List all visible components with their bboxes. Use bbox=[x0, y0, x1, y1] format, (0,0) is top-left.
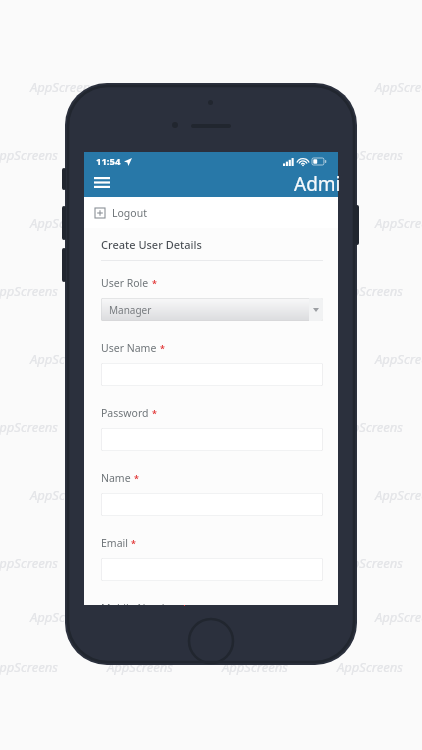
staticText: Password bbox=[101, 406, 149, 420]
staticText: Name bbox=[101, 471, 131, 485]
staticText: Logout bbox=[112, 206, 147, 220]
staticText: * bbox=[160, 342, 165, 354]
staticText: AppScreens bbox=[222, 554, 288, 572]
button[interactable]: Manager bbox=[101, 298, 323, 321]
staticText: AppScreens bbox=[145, 486, 211, 504]
staticText: AppScreens bbox=[337, 146, 403, 164]
staticText: * bbox=[131, 537, 136, 549]
staticText: AppScreens bbox=[337, 554, 403, 572]
staticText: AppScreens bbox=[30, 214, 96, 232]
staticText: AppScreens bbox=[375, 214, 422, 232]
staticText: AppScreens bbox=[222, 146, 288, 164]
staticText: AppScreens bbox=[107, 146, 173, 164]
button[interactable] bbox=[101, 493, 323, 516]
button[interactable] bbox=[101, 558, 323, 581]
staticText: AppScreens bbox=[107, 554, 173, 572]
staticText: AppScreens bbox=[107, 658, 173, 676]
staticText: AppScreens bbox=[30, 350, 96, 368]
staticText: AppScreens bbox=[145, 214, 211, 232]
staticText: AppScreens bbox=[375, 78, 422, 96]
staticText: AppScreens bbox=[0, 554, 58, 572]
staticText: Admi bbox=[294, 171, 341, 197]
staticText: AppScreens bbox=[375, 608, 422, 626]
button[interactable] bbox=[101, 428, 323, 451]
staticText: AppScreens bbox=[375, 350, 422, 368]
staticText: AppScreens bbox=[30, 608, 96, 626]
staticText: * bbox=[152, 277, 157, 289]
staticText: User Name bbox=[101, 341, 157, 355]
staticText: Create User Details bbox=[101, 237, 202, 252]
staticText: AppScreens bbox=[222, 658, 288, 676]
staticText: AppScreens bbox=[30, 486, 96, 504]
staticText: AppScreens bbox=[337, 658, 403, 676]
staticText: * bbox=[134, 472, 139, 484]
staticText: AppScreens bbox=[337, 418, 403, 436]
staticText: Email bbox=[101, 536, 128, 550]
staticText: Manager bbox=[109, 303, 152, 317]
staticText: AppScreens bbox=[0, 146, 58, 164]
button[interactable]: Open navigation menu bbox=[88, 170, 116, 194]
button[interactable] bbox=[101, 363, 323, 386]
staticText: AppScreens bbox=[107, 418, 173, 436]
staticText: AppScreens bbox=[107, 282, 173, 300]
staticText: AppScreens bbox=[0, 418, 58, 436]
staticText: AppScreens bbox=[337, 282, 403, 300]
button[interactable]: Logout bbox=[84, 197, 338, 228]
staticText: AppScreens bbox=[0, 282, 58, 300]
staticText: AppScreens bbox=[260, 486, 326, 504]
staticText: User Role bbox=[101, 276, 149, 290]
staticText: * bbox=[152, 407, 157, 419]
staticText: AppScreens bbox=[375, 486, 422, 504]
staticText: AppScreens bbox=[30, 78, 96, 96]
staticText: 11:54 bbox=[96, 155, 121, 168]
staticText: AppScreens bbox=[260, 78, 326, 96]
staticText: AppScreens bbox=[0, 658, 58, 676]
staticText: AppScreens bbox=[145, 350, 211, 368]
staticText: * bbox=[182, 602, 187, 606]
staticText: AppScreens bbox=[145, 78, 211, 96]
staticText: AppScreens bbox=[222, 282, 288, 300]
staticText: AppScreens bbox=[222, 418, 288, 436]
staticText: Mobile Number bbox=[101, 601, 179, 605]
